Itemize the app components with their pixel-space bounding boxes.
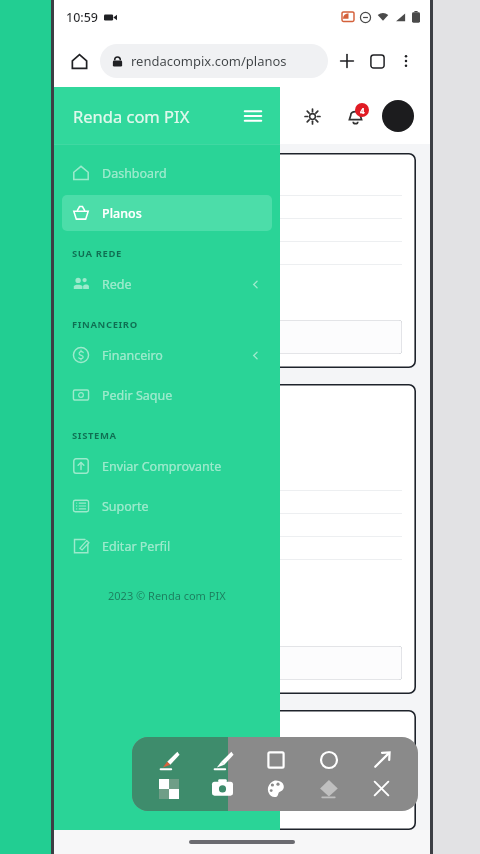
button[interactable]: Pedir Saque: [62, 377, 272, 413]
button[interactable]: Tabs: [362, 46, 392, 76]
button[interactable]: Suporte: [62, 488, 272, 524]
button[interactable]: Home: [64, 46, 94, 76]
staticText: SISTEMA: [72, 429, 117, 442]
button[interactable]: More options: [392, 47, 420, 75]
button[interactable]: Screenshot: [196, 774, 249, 803]
button[interactable]: Pen: [142, 745, 196, 774]
button[interactable]: Mosaic: [142, 774, 196, 803]
button[interactable]: Settings: [298, 102, 326, 130]
staticText: 2023 © Renda com PIX: [108, 588, 226, 603]
button[interactable]: Financeiro: [62, 337, 272, 373]
staticText: Pedir Saque: [102, 387, 173, 404]
button[interactable]: Close: [355, 774, 408, 803]
button[interactable]: Rede: [62, 266, 272, 302]
button[interactable]: [82, 646, 402, 680]
button[interactable]: Enviar Comprovante: [62, 448, 272, 484]
staticText: Renda com PIX: [73, 105, 190, 127]
button[interactable]: Dashboard: [62, 155, 272, 191]
button[interactable]: [68, 710, 416, 830]
button[interactable]: Palette: [249, 774, 302, 803]
button[interactable]: rendacompix.com/planos: [100, 44, 328, 78]
staticText: Enviar Comprovante: [102, 458, 222, 475]
staticText: Dashboard: [102, 165, 167, 182]
staticText: 4: [360, 105, 365, 116]
button[interactable]: [82, 320, 402, 354]
staticText: 10:59: [66, 9, 99, 26]
button[interactable]: Toggle menu: [240, 103, 266, 129]
staticText: Editar Perfil: [102, 538, 171, 555]
button[interactable]: Editar Perfil: [62, 528, 272, 564]
staticText: rendacompix.com/planos: [131, 52, 287, 70]
button[interactable]: Eraser: [302, 774, 355, 803]
button[interactable]: Oval: [302, 745, 355, 774]
button[interactable]: Arrow: [355, 745, 408, 774]
staticText: Suporte: [102, 498, 149, 515]
staticText: Rede: [102, 276, 132, 293]
staticText: SUA REDE: [72, 247, 122, 260]
button[interactable]: New tab: [332, 46, 362, 76]
staticText: Financeiro: [102, 347, 163, 364]
staticText: FINANCEIRO: [72, 318, 138, 331]
button[interactable]: Profile: [382, 100, 414, 132]
button[interactable]: Rectangle: [249, 745, 302, 774]
staticText: Planos: [102, 205, 142, 222]
button[interactable]: Highlighter: [196, 745, 249, 774]
button[interactable]: [68, 153, 416, 368]
button[interactable]: [68, 384, 416, 694]
button[interactable]: Notifications: [340, 101, 370, 131]
button[interactable]: Planos: [62, 195, 272, 231]
